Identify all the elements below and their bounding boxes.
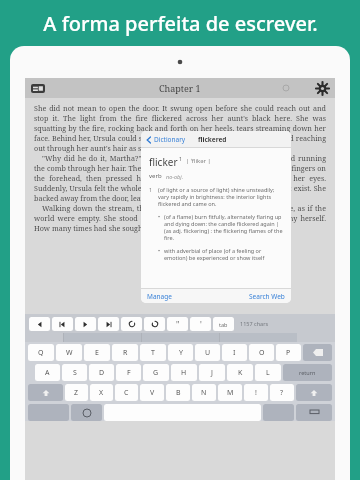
staticText: F (127, 368, 131, 378)
button[interactable]: Key (29, 317, 50, 331)
button[interactable]: Z (65, 384, 88, 401)
staticText: (of light or a source of light) shine un… (158, 186, 284, 207)
button[interactable]: Settings (315, 81, 329, 95)
staticText: P (286, 348, 291, 358)
staticText: H (181, 368, 187, 378)
staticText: S (73, 368, 77, 378)
button[interactable]: ? (270, 384, 294, 401)
button[interactable]: E (84, 344, 110, 361)
staticText: K (238, 368, 243, 378)
button[interactable]: Shift (296, 384, 332, 401)
button[interactable]: I (222, 344, 247, 361)
button[interactable]: T (140, 344, 166, 361)
staticText: flickered (198, 135, 227, 144)
staticText: I (233, 348, 236, 358)
button[interactable]: Key (190, 317, 211, 331)
staticText: Z (74, 388, 79, 398)
staticText: She did not mean to open the door. It sw… (34, 103, 326, 153)
staticText: B (176, 388, 181, 398)
button[interactable]: P (276, 344, 301, 361)
staticText: O (259, 348, 265, 358)
staticText: verb (149, 172, 162, 180)
button[interactable]: Key (121, 317, 142, 331)
staticText: Q (38, 348, 44, 358)
staticText: A (45, 368, 50, 378)
button[interactable]: W (56, 344, 82, 361)
staticText: | ˈflikər | (186, 157, 211, 165)
staticText: M (227, 388, 234, 398)
button[interactable]: J (199, 364, 225, 381)
staticText: C (124, 388, 129, 398)
staticText: 1157 chars (240, 320, 269, 327)
button[interactable]: Key (75, 317, 96, 331)
button[interactable]: Key (213, 317, 234, 331)
staticText: • (158, 213, 164, 220)
button[interactable]: Contents (31, 84, 45, 93)
staticText: J (211, 368, 213, 378)
staticText: Y (179, 348, 183, 358)
staticText: ! (255, 388, 257, 398)
button[interactable]: A (35, 364, 60, 381)
button[interactable]: Shift (28, 384, 63, 401)
button[interactable]: Dictionary (146, 135, 186, 144)
button[interactable]: return (283, 364, 332, 381)
staticText: U (205, 348, 211, 358)
staticText: D (99, 368, 105, 378)
staticText: Chapter 1 (159, 82, 201, 94)
staticText: 1 (179, 156, 182, 163)
staticText: flicker (149, 155, 178, 169)
button[interactable]: M (218, 384, 242, 401)
staticText: L (266, 368, 270, 378)
button[interactable]: F (116, 364, 141, 381)
staticText: ' (200, 319, 202, 330)
button[interactable]: Search Web (249, 292, 285, 301)
button[interactable]: U (195, 344, 220, 361)
staticText: X (99, 388, 104, 398)
button[interactable]: ! (244, 384, 268, 401)
button[interactable]: Backspace (303, 344, 332, 361)
button[interactable]: Q (28, 344, 54, 361)
button[interactable]: K (227, 364, 253, 381)
staticText: 1 (149, 186, 158, 193)
button[interactable]: B (166, 384, 190, 401)
staticText: R (123, 348, 128, 358)
staticText: tab (219, 321, 228, 328)
button[interactable]: V (140, 384, 164, 401)
button[interactable]: Key (52, 317, 73, 331)
staticText: "Why did he do it, Martha?" her mother a… (34, 153, 326, 203)
button[interactable]: G (143, 364, 169, 381)
staticText: A forma perfeita de escrever. (43, 10, 318, 37)
staticText: no-obj. (166, 173, 184, 180)
button[interactable]: Emoji (71, 404, 102, 421)
staticText: T (151, 348, 155, 358)
staticText: W (66, 348, 73, 358)
button[interactable]: H (171, 364, 197, 381)
button[interactable]: Key (167, 317, 188, 331)
staticText: (of a flame) burn fitfully, alternately … (164, 213, 284, 241)
staticText: " (176, 319, 180, 330)
button[interactable]: L (255, 364, 281, 381)
staticText: N (201, 388, 207, 398)
button[interactable]: Hide keyboard (296, 404, 332, 421)
button[interactable]: Manage (147, 292, 172, 301)
button[interactable]: O (249, 344, 274, 361)
staticText: V (150, 388, 155, 398)
button[interactable]: Y (168, 344, 193, 361)
button[interactable]: S (62, 364, 87, 381)
staticText: Walking down the stream, there were many… (34, 203, 326, 233)
button[interactable]: C (115, 384, 138, 401)
button[interactable]: N (192, 384, 216, 401)
button[interactable]: R (112, 344, 138, 361)
button[interactable]: Key (144, 317, 165, 331)
button[interactable]: X (90, 384, 113, 401)
button[interactable]: Key (98, 317, 119, 331)
staticText: with adverbial of place (of a feeling or… (164, 247, 284, 261)
staticText: E (95, 348, 99, 358)
staticText: ? (280, 388, 284, 398)
staticText: G (153, 368, 159, 378)
staticText: return (299, 369, 316, 376)
button[interactable]: D (89, 364, 114, 381)
